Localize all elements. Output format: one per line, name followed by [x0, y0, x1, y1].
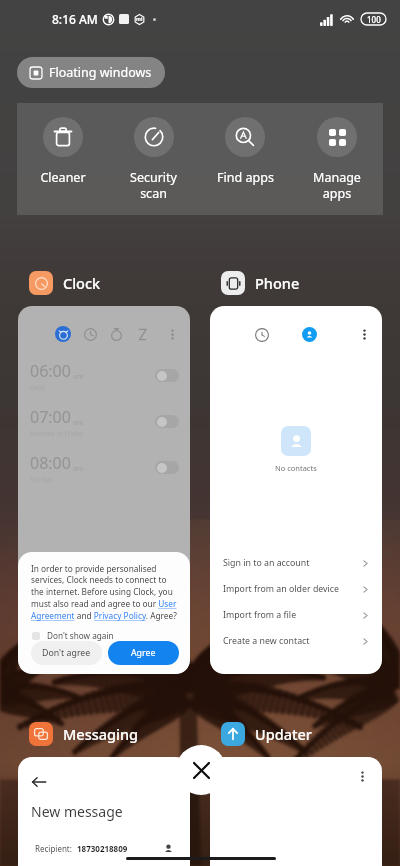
staticText: Manage apps	[313, 169, 361, 202]
button[interactable]: Clock	[18, 268, 190, 298]
staticText: Sat Sun	[30, 475, 53, 483]
button[interactable]: Create a new contact	[223, 628, 370, 654]
button[interactable]: Floating windows	[17, 57, 165, 88]
staticText: Messaging	[63, 724, 139, 744]
button[interactable]: Updater	[210, 719, 382, 749]
button[interactable]: 06:00	[18, 306, 190, 674]
staticText: Daily	[30, 383, 46, 391]
staticText: Clock	[63, 273, 101, 293]
button[interactable]	[155, 369, 179, 382]
button[interactable]: Import from a file	[223, 602, 370, 628]
button[interactable]: Import from an older device	[223, 576, 370, 602]
button[interactable]: Messaging	[18, 719, 190, 749]
staticText: Import from a file	[223, 609, 297, 621]
staticText: Security scan	[130, 169, 177, 202]
button[interactable]: Back	[31, 774, 47, 790]
button[interactable]: Don't agree	[31, 641, 102, 665]
staticText: 100	[367, 14, 381, 25]
staticText: Import from an older device	[223, 583, 340, 595]
button[interactable]: Back	[18, 757, 190, 866]
staticText: mi	[136, 16, 143, 23]
button[interactable]: 07:00	[30, 406, 179, 437]
staticText: 8:16 AM	[52, 11, 98, 27]
staticText: am	[73, 418, 84, 428]
button[interactable]	[155, 461, 179, 474]
staticText: Don't agree	[42, 647, 91, 659]
staticText: Updater	[255, 724, 312, 744]
button[interactable]	[210, 757, 382, 866]
staticText: New message	[31, 802, 123, 821]
staticText: Phone	[255, 273, 300, 293]
staticText: Don't show again	[47, 630, 114, 641]
button[interactable]: No contacts	[210, 306, 382, 674]
button[interactable]: Agree	[108, 641, 179, 665]
button[interactable]: Phone	[210, 268, 382, 298]
staticText: 07:00	[30, 406, 71, 428]
staticText: In order to provide personalised service…	[31, 563, 179, 622]
button[interactable]: Sign in to an account	[223, 550, 370, 576]
staticText: 08:00	[30, 452, 71, 474]
button[interactable]: Security scan	[108, 103, 199, 215]
button[interactable]: 06:00	[30, 360, 179, 391]
staticText: Create a new contact	[223, 635, 310, 647]
staticText: 06:00	[30, 360, 71, 382]
staticText: Find apps	[217, 169, 274, 186]
button[interactable]: 08:00	[30, 452, 179, 483]
button[interactable]: Close all	[176, 745, 226, 795]
staticText: Floating windows	[49, 64, 152, 81]
staticText: 18730218809	[77, 843, 128, 854]
button[interactable]	[155, 415, 179, 428]
button[interactable]: Find apps	[199, 103, 291, 215]
button[interactable]: Don't show again	[31, 630, 114, 641]
button[interactable]: Manage apps	[291, 103, 383, 215]
staticText: Agree	[131, 647, 156, 659]
staticText: Sign in to an account	[223, 557, 310, 569]
staticText: am	[73, 464, 84, 474]
staticText: am	[73, 372, 84, 382]
button[interactable]: Cleaner	[17, 103, 108, 215]
staticText: Monday to Friday	[30, 429, 84, 437]
staticText: Recipient:	[35, 843, 72, 854]
staticText: No contacts	[275, 463, 317, 473]
staticText: Cleaner	[40, 169, 86, 186]
